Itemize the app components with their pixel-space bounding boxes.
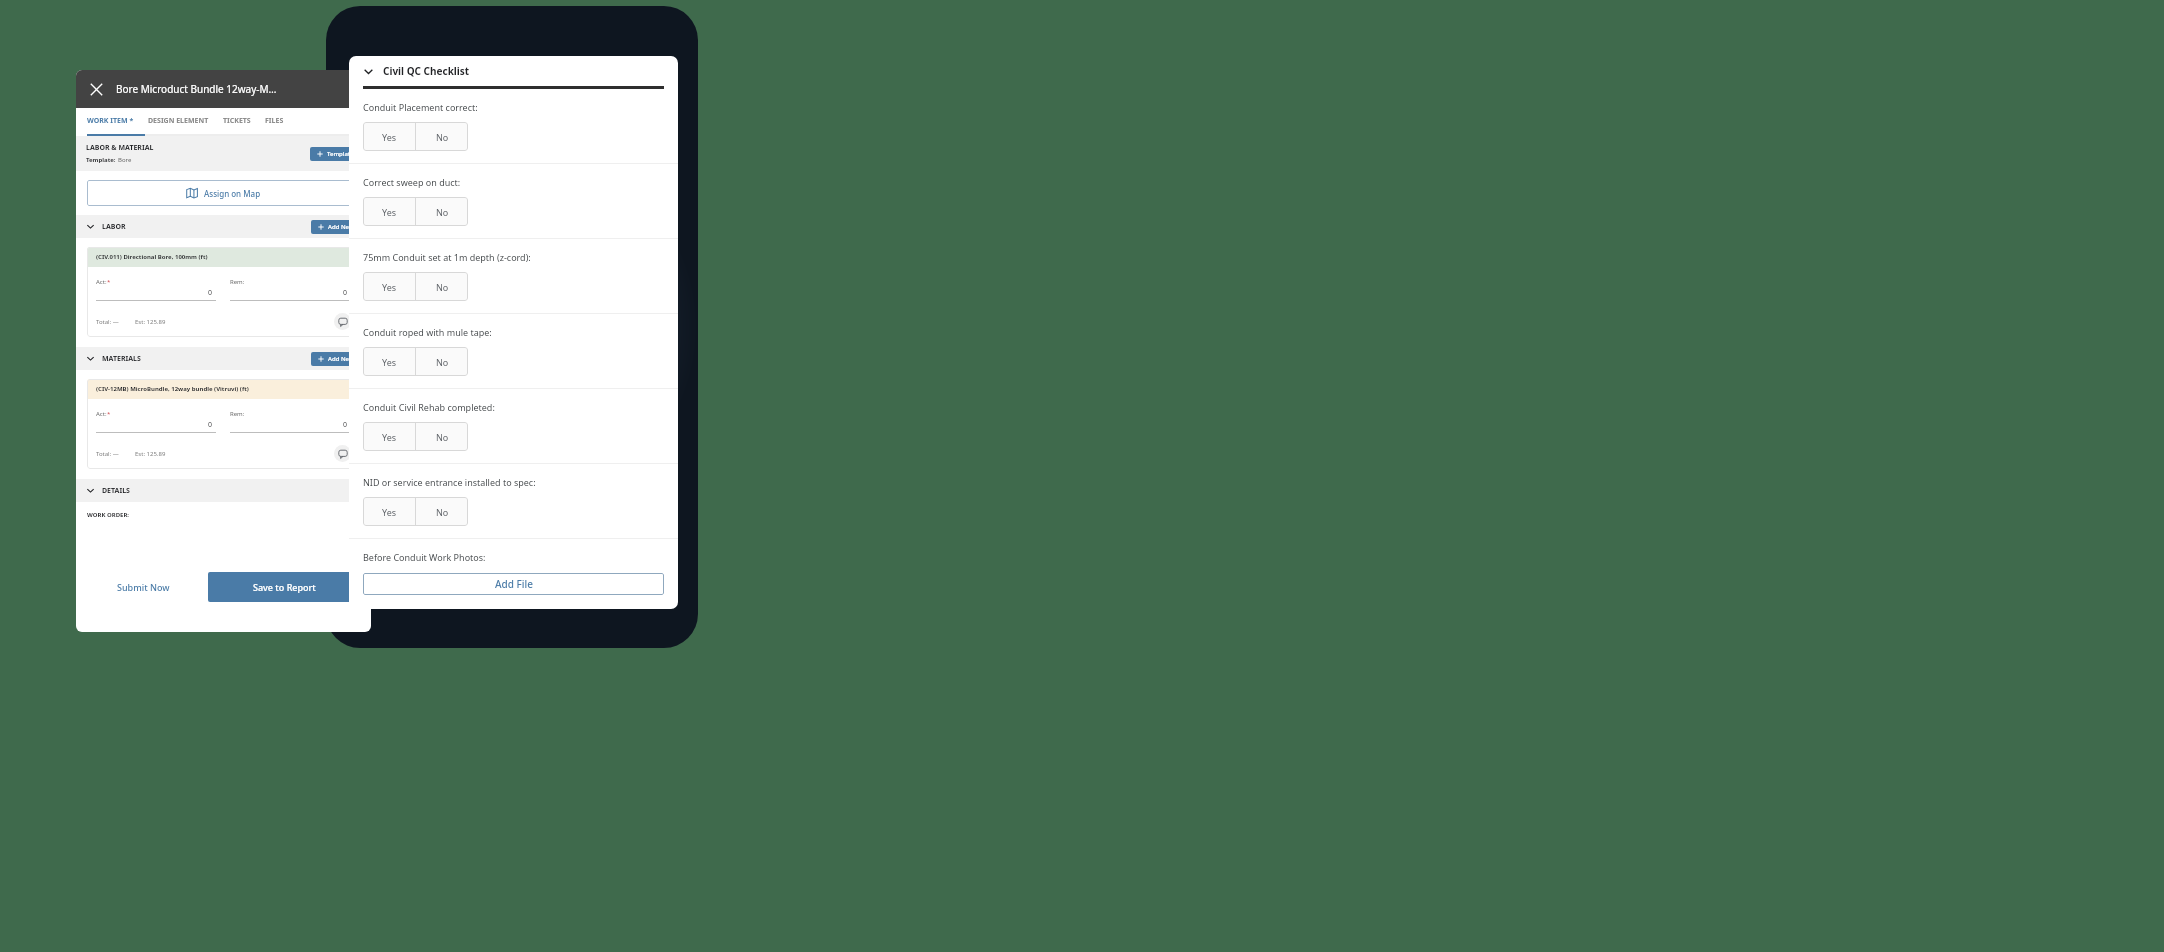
staticText: LABOR & MATERIAL [86, 143, 154, 153]
staticText: Add File [495, 577, 533, 591]
staticText: Yes [382, 431, 397, 443]
staticText: Conduit roped with mule tape: [363, 326, 492, 338]
staticText: * [107, 410, 111, 418]
staticText: DETAILS [102, 486, 130, 496]
staticText: Template: [86, 156, 118, 164]
staticText: Correct sweep on duct: [363, 176, 461, 188]
button[interactable]: LABOR [76, 215, 371, 238]
staticText: Conduit Placement correct: [363, 101, 478, 113]
button[interactable]: Yes [363, 347, 415, 376]
staticText: (CIV.011) Directional Bore, 100mm (ft) [96, 253, 208, 261]
button[interactable]: WORK ITEM * [87, 116, 134, 126]
staticText: Yes [382, 131, 397, 143]
staticText: NID or service entrance installed to spe… [363, 476, 536, 488]
staticText: Conduit Civil Rehab completed: [363, 401, 495, 413]
staticText: DESIGN ELEMENT [148, 116, 209, 126]
button[interactable]: Comment [334, 313, 351, 330]
staticText: * [107, 278, 111, 286]
button[interactable]: No [416, 347, 468, 376]
staticText: Civil QC Checklist [383, 64, 470, 78]
staticText: Act: [96, 278, 107, 286]
staticText: 75mm Conduit set at 1m depth (z-cord): [363, 251, 531, 263]
staticText: Est: 125.89 [135, 450, 166, 458]
staticText: 0 [96, 420, 212, 430]
staticText: No [436, 431, 449, 443]
staticText: No [436, 131, 449, 143]
staticText: Est: 125.89 [135, 318, 166, 326]
staticText: Add New [328, 355, 354, 363]
staticText: Total: — [96, 318, 119, 326]
staticText: TICKETS [223, 116, 251, 126]
staticText: Before Conduit Work Photos: [363, 551, 486, 563]
button[interactable]: MATERIALS [76, 347, 371, 370]
staticText: Total: — [96, 450, 119, 458]
staticText: Yes [382, 206, 397, 218]
staticText: Assign on Map [204, 188, 261, 199]
button[interactable]: Yes [363, 422, 415, 451]
staticText: 0 [230, 420, 347, 430]
staticText: LABOR [102, 222, 126, 232]
staticText: Submit Now [117, 581, 170, 593]
staticText: Save to Report [253, 581, 316, 593]
button[interactable]: TICKETS [223, 116, 251, 126]
staticText: No [436, 281, 449, 293]
button[interactable]: Add New [311, 220, 361, 234]
button[interactable]: (CIV-12MB) MicroBundle, 12way bundle (Vi… [87, 379, 360, 469]
staticText: Rem: [230, 278, 245, 286]
staticText: WORK ORDER: [87, 511, 130, 519]
staticText: Add New [328, 223, 354, 231]
staticText: Yes [382, 356, 397, 368]
button[interactable]: Comment [334, 445, 351, 462]
button[interactable]: No [416, 197, 468, 226]
button[interactable]: No [416, 122, 468, 151]
staticText: No [436, 356, 449, 368]
staticText: WORK ITEM * [87, 116, 134, 126]
button[interactable]: Add File [363, 573, 664, 595]
staticText: Yes [382, 281, 397, 293]
staticText: 0 [230, 288, 347, 298]
button[interactable]: Yes [363, 197, 415, 226]
staticText: Yes [382, 506, 397, 518]
button[interactable]: (CIV.011) Directional Bore, 100mm (ft) [87, 247, 360, 337]
staticText: Bore [118, 156, 132, 164]
staticText: Act: [96, 410, 107, 418]
staticText: No [436, 506, 449, 518]
button[interactable]: Yes [363, 122, 415, 151]
staticText: FILES [265, 116, 284, 126]
button[interactable]: No [416, 272, 468, 301]
staticText: No [436, 206, 449, 218]
staticText: MATERIALS [102, 354, 141, 364]
staticText: Bore Microduct Bundle 12way-M… [116, 82, 277, 96]
button[interactable]: Template [310, 147, 361, 161]
button[interactable]: Submit Now [86, 572, 200, 602]
button[interactable]: Save to Report [208, 572, 361, 602]
button[interactable]: FILES [265, 116, 284, 126]
button[interactable]: Civil QC Checklist [349, 56, 678, 86]
button[interactable]: DETAILS [76, 479, 371, 502]
staticText: 0 [96, 288, 212, 298]
staticText: Rem: [230, 410, 245, 418]
button[interactable]: Yes [363, 272, 415, 301]
button[interactable]: No [416, 497, 468, 526]
button[interactable]: No [416, 422, 468, 451]
button[interactable]: Close [76, 70, 116, 108]
button[interactable]: Yes [363, 497, 415, 526]
button[interactable]: Add New [311, 352, 361, 366]
staticText: (CIV-12MB) MicroBundle, 12way bundle (Vi… [96, 385, 249, 393]
staticText: Template [327, 150, 354, 158]
button[interactable]: DESIGN ELEMENT [148, 116, 209, 126]
button[interactable]: Assign on Map [87, 180, 360, 206]
